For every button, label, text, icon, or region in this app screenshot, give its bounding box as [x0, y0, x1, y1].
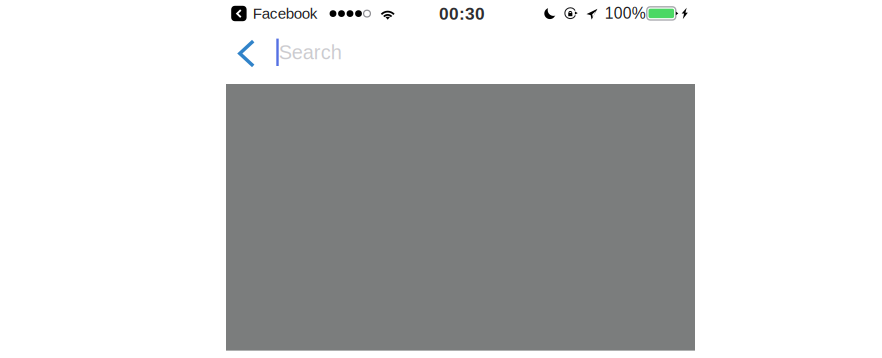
button[interactable]: Facebook — [231, 2, 319, 24]
staticText: Search — [279, 41, 342, 63]
button[interactable]: Back — [225, 31, 268, 76]
staticText: 100% — [605, 5, 646, 22]
staticText: 00:30 — [439, 4, 485, 23]
staticText: Facebook — [253, 5, 318, 22]
button[interactable]: Search — [276, 34, 396, 70]
